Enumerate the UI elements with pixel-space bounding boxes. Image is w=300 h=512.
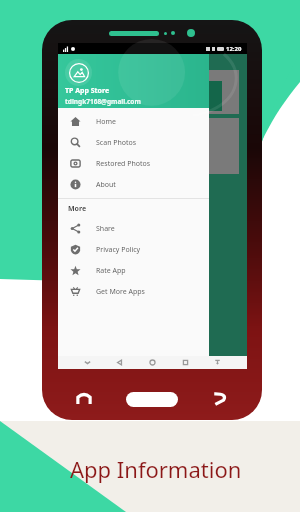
staticText: Scan Photos	[96, 138, 137, 148]
staticText: About	[96, 180, 116, 190]
staticText: Rate App	[96, 266, 126, 276]
staticText: App Information	[70, 454, 242, 484]
staticText: More	[68, 204, 87, 214]
staticText: Share	[145, 157, 162, 165]
button[interactable]: Home	[58, 111, 209, 132]
button[interactable]: Share	[58, 218, 209, 239]
staticText: Photos	[143, 102, 163, 110]
button[interactable]: Restored Photos	[58, 153, 209, 174]
staticText: Home	[96, 117, 116, 127]
staticText: tdlngk7168@gmail.com	[65, 97, 141, 106]
button[interactable]: About	[58, 174, 209, 195]
button[interactable]: Rate App	[58, 260, 209, 281]
staticText: 12:20	[226, 45, 242, 53]
button[interactable]: Privacy Policy	[58, 239, 209, 260]
staticText: Share	[96, 224, 115, 234]
staticText: Restored Photos	[96, 159, 151, 169]
staticText: Privacy Policy	[96, 245, 141, 255]
staticText: TP App Store	[65, 86, 110, 96]
button[interactable]: Scan Photos	[58, 132, 209, 153]
button[interactable]: Get More Apps	[58, 281, 209, 302]
staticText: Get More Apps	[96, 287, 145, 297]
